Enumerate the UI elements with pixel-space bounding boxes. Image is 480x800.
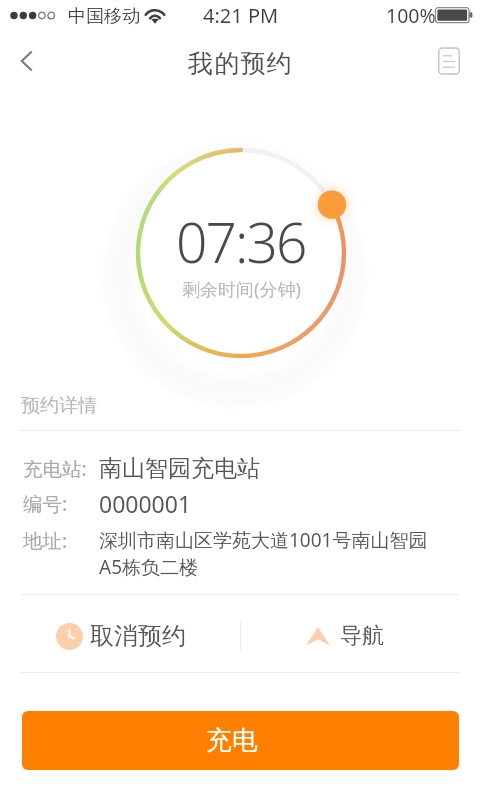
- staticText: 地址:: [23, 527, 68, 554]
- button[interactable]: Order records: [426, 34, 480, 88]
- staticText: 07:36: [176, 204, 306, 279]
- staticText: 我的预约: [188, 48, 293, 79]
- staticText: 导航: [340, 622, 384, 650]
- staticText: 充电站:: [23, 455, 87, 482]
- staticText: 中国移动: [68, 5, 140, 28]
- button[interactable]: 导航: [306, 608, 416, 664]
- staticText: 深圳市南山区学苑大道1001号南山智园A5栋负二楼: [99, 527, 434, 580]
- staticText: 4:21 PM: [203, 2, 279, 29]
- staticText: 编号:: [23, 490, 68, 517]
- button[interactable]: Back: [0, 34, 54, 88]
- staticText: 预约详情: [21, 394, 97, 418]
- staticText: 100%: [386, 2, 436, 29]
- staticText: 0000001: [99, 488, 192, 519]
- button[interactable]: 充电: [22, 711, 459, 770]
- staticText: 剩余时间(分钟): [182, 277, 301, 302]
- staticText: 取消预约: [90, 621, 186, 651]
- button[interactable]: 取消预约: [56, 608, 221, 664]
- staticText: 充电: [206, 724, 258, 757]
- staticText: 南山智园充电站: [99, 454, 260, 483]
